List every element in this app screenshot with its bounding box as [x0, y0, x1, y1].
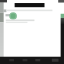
button[interactable] [4, 1, 15, 5]
button[interactable] [3, 9, 7, 12]
button[interactable] [0, 59, 21, 64]
